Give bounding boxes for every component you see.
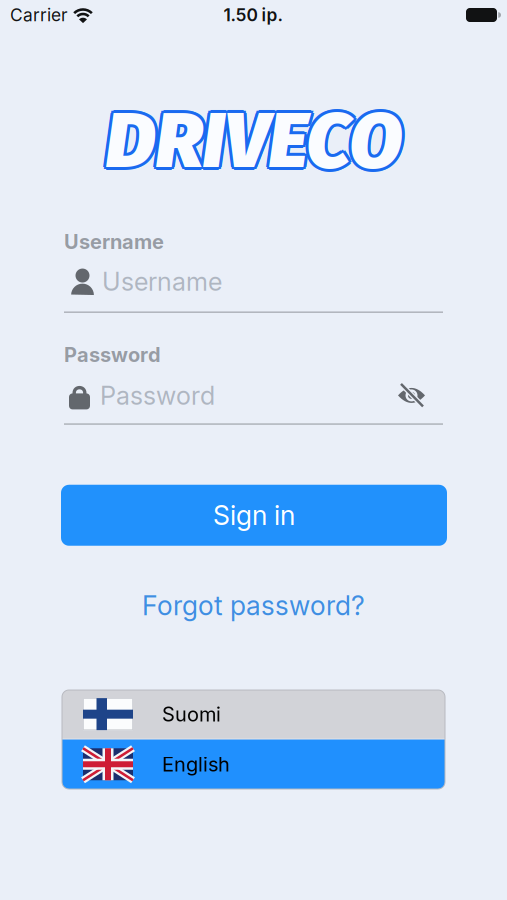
staticText: DRIVECO — [108, 97, 404, 190]
button[interactable]: Password — [64, 380, 398, 410]
staticText: Suomi — [162, 702, 221, 726]
staticText: DRIVECO — [103, 97, 399, 190]
button[interactable]: Suomi — [62, 690, 445, 739]
staticText: DRIVECO — [105, 98, 401, 190]
staticText: Carrier — [10, 5, 68, 25]
staticText: Sign in — [213, 499, 295, 531]
button[interactable]: Forgot password? — [142, 590, 365, 621]
staticText: DRIVECO — [108, 95, 404, 187]
staticText: English — [162, 752, 230, 776]
staticText: DRIVECO — [105, 95, 401, 187]
button[interactable]: English — [62, 739, 445, 789]
staticText: DRIVECO — [103, 92, 399, 185]
staticText: Password — [64, 343, 161, 366]
staticText: DRIVECO — [108, 92, 404, 185]
staticText: Username — [102, 267, 222, 296]
button[interactable] — [398, 383, 443, 407]
staticText: Username — [64, 230, 164, 254]
button[interactable]: Username — [64, 267, 443, 296]
staticText: Forgot password? — [142, 590, 365, 621]
staticText: DRIVECO — [105, 92, 401, 184]
button[interactable]: Sign in — [0, 485, 507, 546]
staticText: 1.50 ip. — [223, 5, 283, 25]
staticText: DRIVECO — [102, 95, 398, 187]
staticText: Password — [100, 380, 215, 410]
